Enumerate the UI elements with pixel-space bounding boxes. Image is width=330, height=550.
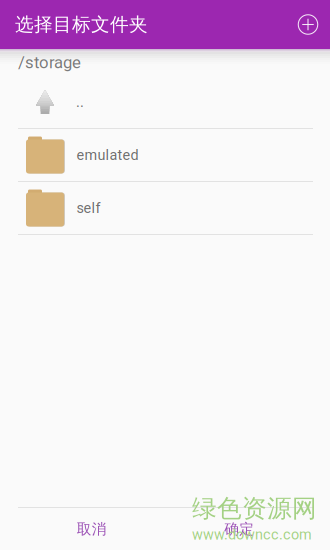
staticText: /storage	[18, 53, 81, 72]
staticText: ..	[76, 93, 84, 111]
staticText: emulated	[76, 147, 138, 163]
staticText: 绿色资源网	[192, 493, 317, 524]
button[interactable]: ..	[0, 76, 330, 128]
button[interactable]: emulated	[0, 129, 330, 181]
button[interactable]: New folder	[286, 2, 330, 46]
staticText: 选择目标文件夹	[15, 13, 148, 36]
button[interactable]: 确定	[165, 508, 313, 550]
staticText: self	[76, 200, 100, 216]
staticText: 取消	[77, 520, 107, 538]
staticText: www.downcc.com	[192, 526, 312, 543]
staticText: 确定	[224, 520, 254, 538]
button[interactable]: 取消	[18, 508, 165, 550]
button[interactable]: self	[0, 182, 330, 234]
